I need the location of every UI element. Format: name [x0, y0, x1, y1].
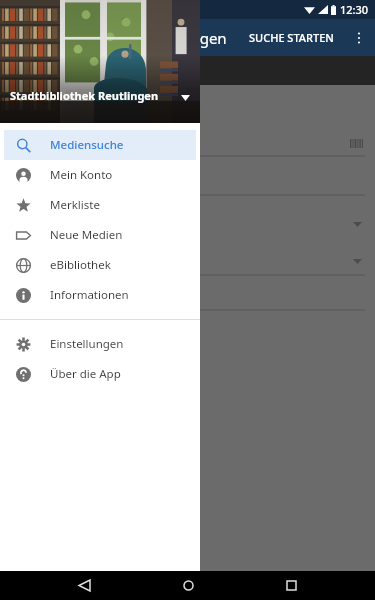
button[interactable]: Merkliste — [4, 190, 196, 220]
button[interactable]: Home — [168, 571, 208, 600]
button[interactable]: eBibliothek — [4, 250, 196, 280]
staticText: Mediensuche Reutlingen — [52, 28, 227, 48]
staticText: Einstellungen — [50, 336, 124, 352]
staticText: Mein Konto — [50, 167, 113, 183]
button[interactable]: Mediensuche — [4, 130, 196, 160]
button[interactable]: Back — [64, 571, 104, 600]
staticText: 12:30 — [340, 2, 369, 17]
button[interactable]: Stadtbibliothek Reutlingen — [0, 0, 200, 123]
staticText: Neue Medien — [50, 227, 123, 243]
button[interactable]: Einstellungen — [4, 329, 196, 359]
button[interactable]: Informationen — [4, 280, 196, 310]
staticText: Informationen — [50, 287, 129, 303]
button[interactable]: More options — [343, 22, 375, 54]
button[interactable]: Mein Konto — [4, 160, 196, 190]
button[interactable]: Neue Medien — [4, 220, 196, 250]
staticText: Über die App — [50, 366, 121, 382]
staticText: SUCHE STARTEN — [249, 30, 334, 45]
staticText: Stadtbibliothek Reutlingen — [10, 88, 159, 103]
button[interactable]: Recent apps — [271, 571, 311, 600]
staticText: Merkliste — [50, 197, 100, 213]
button[interactable]: Über die App — [4, 359, 196, 389]
button[interactable]: SUCHE STARTEN — [240, 21, 343, 54]
staticText: eBibliothek — [50, 257, 111, 273]
staticText: Mediensuche — [50, 137, 124, 153]
